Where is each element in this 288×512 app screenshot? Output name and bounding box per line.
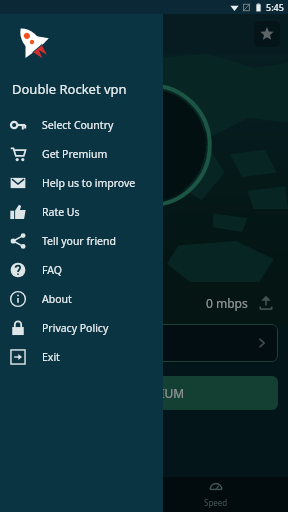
staticText: Best location bbox=[20, 335, 93, 351]
staticText: 0 mbps bbox=[206, 295, 248, 311]
button[interactable]: Tell your friend bbox=[0, 226, 163, 255]
button[interactable]: Best location bbox=[10, 324, 278, 362]
staticText: Help us to improve bbox=[42, 176, 136, 190]
button[interactable]: Privacy Policy bbox=[0, 313, 163, 342]
staticText: Double Rocket vpn bbox=[12, 23, 162, 46]
button[interactable]: GET PREMIUM bbox=[10, 376, 278, 410]
staticText: Select Country bbox=[42, 118, 114, 132]
button[interactable]: Rate Us bbox=[0, 197, 163, 226]
button[interactable]: Speed bbox=[144, 477, 288, 512]
staticText: Tell your friend bbox=[42, 234, 116, 248]
button[interactable]: FAQ bbox=[0, 255, 163, 284]
staticText: Not connected bbox=[10, 257, 86, 272]
staticText: 0 mbps bbox=[36, 295, 78, 311]
button[interactable]: Help us to improve bbox=[0, 168, 163, 197]
staticText: Double Rocket vpn bbox=[12, 80, 127, 98]
staticText: About bbox=[42, 292, 72, 306]
button[interactable]: Exit bbox=[0, 342, 163, 371]
staticText: 5:45 bbox=[266, 1, 284, 13]
staticText: Exit bbox=[42, 350, 60, 364]
button[interactable]: Select Country bbox=[0, 110, 163, 139]
staticText: Get Premium bbox=[42, 147, 108, 161]
staticText: Privacy Policy bbox=[42, 321, 109, 335]
button[interactable]: Get Premium bbox=[0, 139, 163, 168]
staticText: Speed bbox=[204, 497, 228, 508]
button[interactable]: About bbox=[0, 284, 163, 313]
staticText: GET PREMIUM bbox=[103, 385, 185, 401]
button[interactable]: Favourite bbox=[254, 21, 280, 47]
staticText: FAQ bbox=[42, 263, 62, 277]
staticText: Rate Us bbox=[42, 205, 80, 219]
